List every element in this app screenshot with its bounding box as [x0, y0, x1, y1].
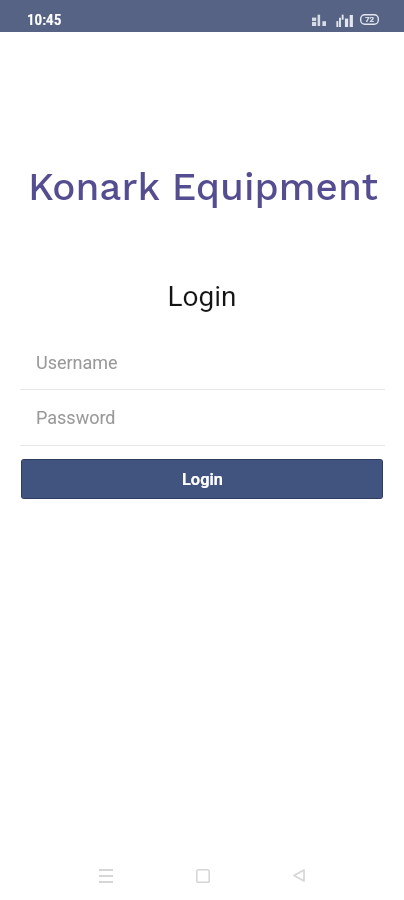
- staticText: 10:45: [27, 11, 62, 29]
- button[interactable]: Password: [20, 397, 384, 425]
- staticText: Login: [0, 280, 404, 313]
- button[interactable]: Back: [275, 851, 323, 899]
- button[interactable]: Home: [179, 852, 227, 900]
- button[interactable]: Username: [20, 342, 384, 370]
- staticText: Konark Equipment: [28, 164, 379, 209]
- button[interactable]: Recent apps: [82, 852, 130, 900]
- staticText: Login: [182, 470, 223, 489]
- button[interactable]: Login: [22, 460, 382, 498]
- staticText: 72: [360, 15, 379, 24]
